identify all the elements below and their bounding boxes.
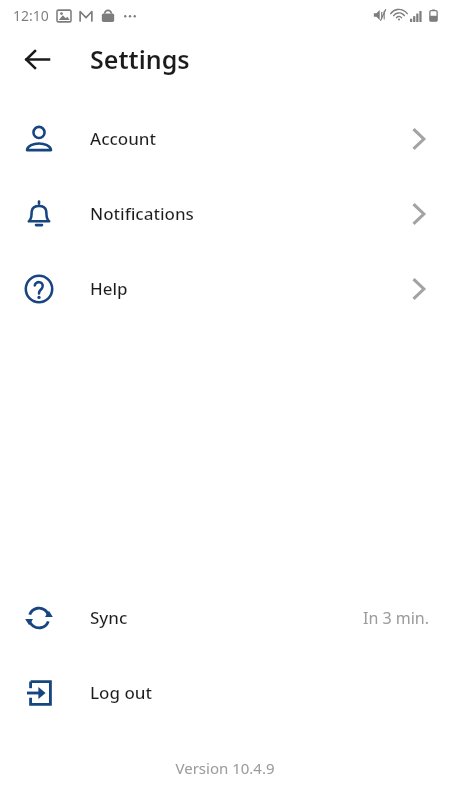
staticText: Log out [90,681,152,704]
staticText: In 3 min. [363,607,430,629]
button[interactable]: Back [13,35,61,83]
button[interactable]: Help [0,251,450,326]
staticText: Notifications [90,202,194,225]
button[interactable]: Sync [0,580,450,655]
button[interactable]: Account [0,101,450,176]
staticText: 12:10 [13,6,49,25]
staticText: Sync [90,606,128,629]
button[interactable]: Notifications [0,176,450,251]
staticText: Account [90,127,157,150]
button[interactable]: Log out [0,655,450,730]
staticText: Version 10.4.9 [0,758,450,778]
staticText: Settings [90,42,190,76]
staticText: Help [90,277,128,300]
